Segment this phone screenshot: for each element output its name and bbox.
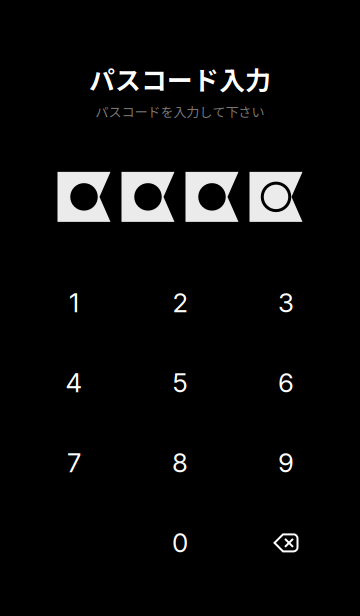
staticText: 1 <box>69 287 79 319</box>
staticText: パスコード入力 <box>89 60 271 97</box>
button[interactable]: 0 <box>127 503 233 583</box>
staticText: 4 <box>65 367 82 399</box>
button[interactable]: 2 <box>127 263 233 343</box>
staticText: 3 <box>278 287 294 319</box>
button[interactable]: 5 <box>127 343 233 423</box>
button[interactable]: 6 <box>233 343 339 423</box>
button[interactable]: 9 <box>233 423 339 503</box>
staticText: 0 <box>172 527 188 559</box>
staticText: 9 <box>278 447 294 479</box>
staticText: 7 <box>67 447 81 479</box>
button[interactable]: 7 <box>21 423 127 503</box>
button[interactable]: Delete <box>233 503 339 583</box>
staticText: 6 <box>278 367 294 399</box>
button[interactable]: 8 <box>127 423 233 503</box>
staticText: 8 <box>172 447 188 479</box>
staticText: 5 <box>172 367 187 399</box>
button[interactable]: 4 <box>21 343 127 423</box>
staticText: パスコードを入力して下さい <box>95 102 264 121</box>
staticText: 2 <box>172 287 187 319</box>
button[interactable]: 3 <box>233 263 339 343</box>
button[interactable]: 1 <box>21 263 127 343</box>
